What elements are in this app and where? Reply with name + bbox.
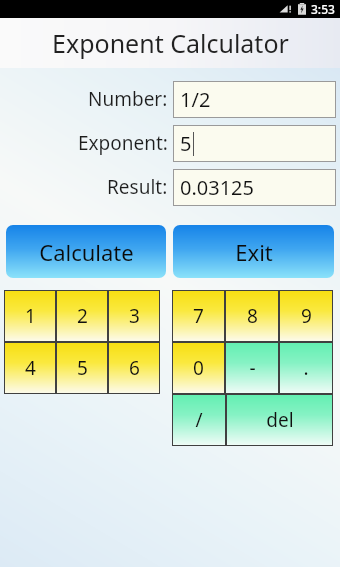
button[interactable]: 5 xyxy=(56,342,108,394)
staticText: 2 xyxy=(77,303,88,329)
button[interactable]: Calculate xyxy=(6,225,166,278)
button[interactable]: 5 xyxy=(173,125,336,162)
button[interactable]: Exit xyxy=(173,225,334,278)
button[interactable]: 8 xyxy=(225,290,279,342)
button[interactable]: 1 xyxy=(4,290,56,342)
staticText: - xyxy=(249,355,256,381)
staticText: Number: xyxy=(88,86,168,112)
staticText: 0 xyxy=(193,355,204,381)
staticText: / xyxy=(195,407,203,433)
staticText: 4 xyxy=(25,355,36,381)
button[interactable]: . xyxy=(279,342,333,394)
button[interactable]: 7 xyxy=(172,290,225,342)
button[interactable]: 9 xyxy=(279,290,333,342)
staticText: del xyxy=(266,407,294,433)
staticText: Exponent Calculator xyxy=(52,26,289,60)
button[interactable]: del xyxy=(226,394,333,446)
staticText: 7 xyxy=(193,303,204,329)
staticText: . xyxy=(303,355,309,381)
staticText: 1 xyxy=(25,303,36,329)
button[interactable]: / xyxy=(172,394,226,446)
staticText: Result: xyxy=(107,174,168,200)
button[interactable]: 0 xyxy=(172,342,225,394)
button[interactable]: 4 xyxy=(4,342,56,394)
staticText: 8 xyxy=(247,303,258,329)
button[interactable]: 2 xyxy=(56,290,108,342)
button[interactable]: - xyxy=(225,342,279,394)
staticText: 3:53 xyxy=(311,1,335,17)
staticText: Exponent: xyxy=(78,130,168,156)
staticText: 6 xyxy=(129,355,140,381)
staticText: 1/2 xyxy=(180,86,211,113)
staticText: Calculate xyxy=(39,237,134,267)
button[interactable]: 1/2 xyxy=(173,81,336,118)
staticText: 9 xyxy=(301,303,312,329)
button[interactable]: 6 xyxy=(108,342,160,394)
staticText: 5 xyxy=(180,130,192,157)
staticText: 3 xyxy=(129,303,140,329)
staticText: 0.03125 xyxy=(180,174,254,201)
staticText: 5 xyxy=(77,355,88,381)
button[interactable]: 3 xyxy=(108,290,160,342)
staticText: Exit xyxy=(235,237,273,267)
button[interactable]: 0.03125 xyxy=(173,169,336,206)
